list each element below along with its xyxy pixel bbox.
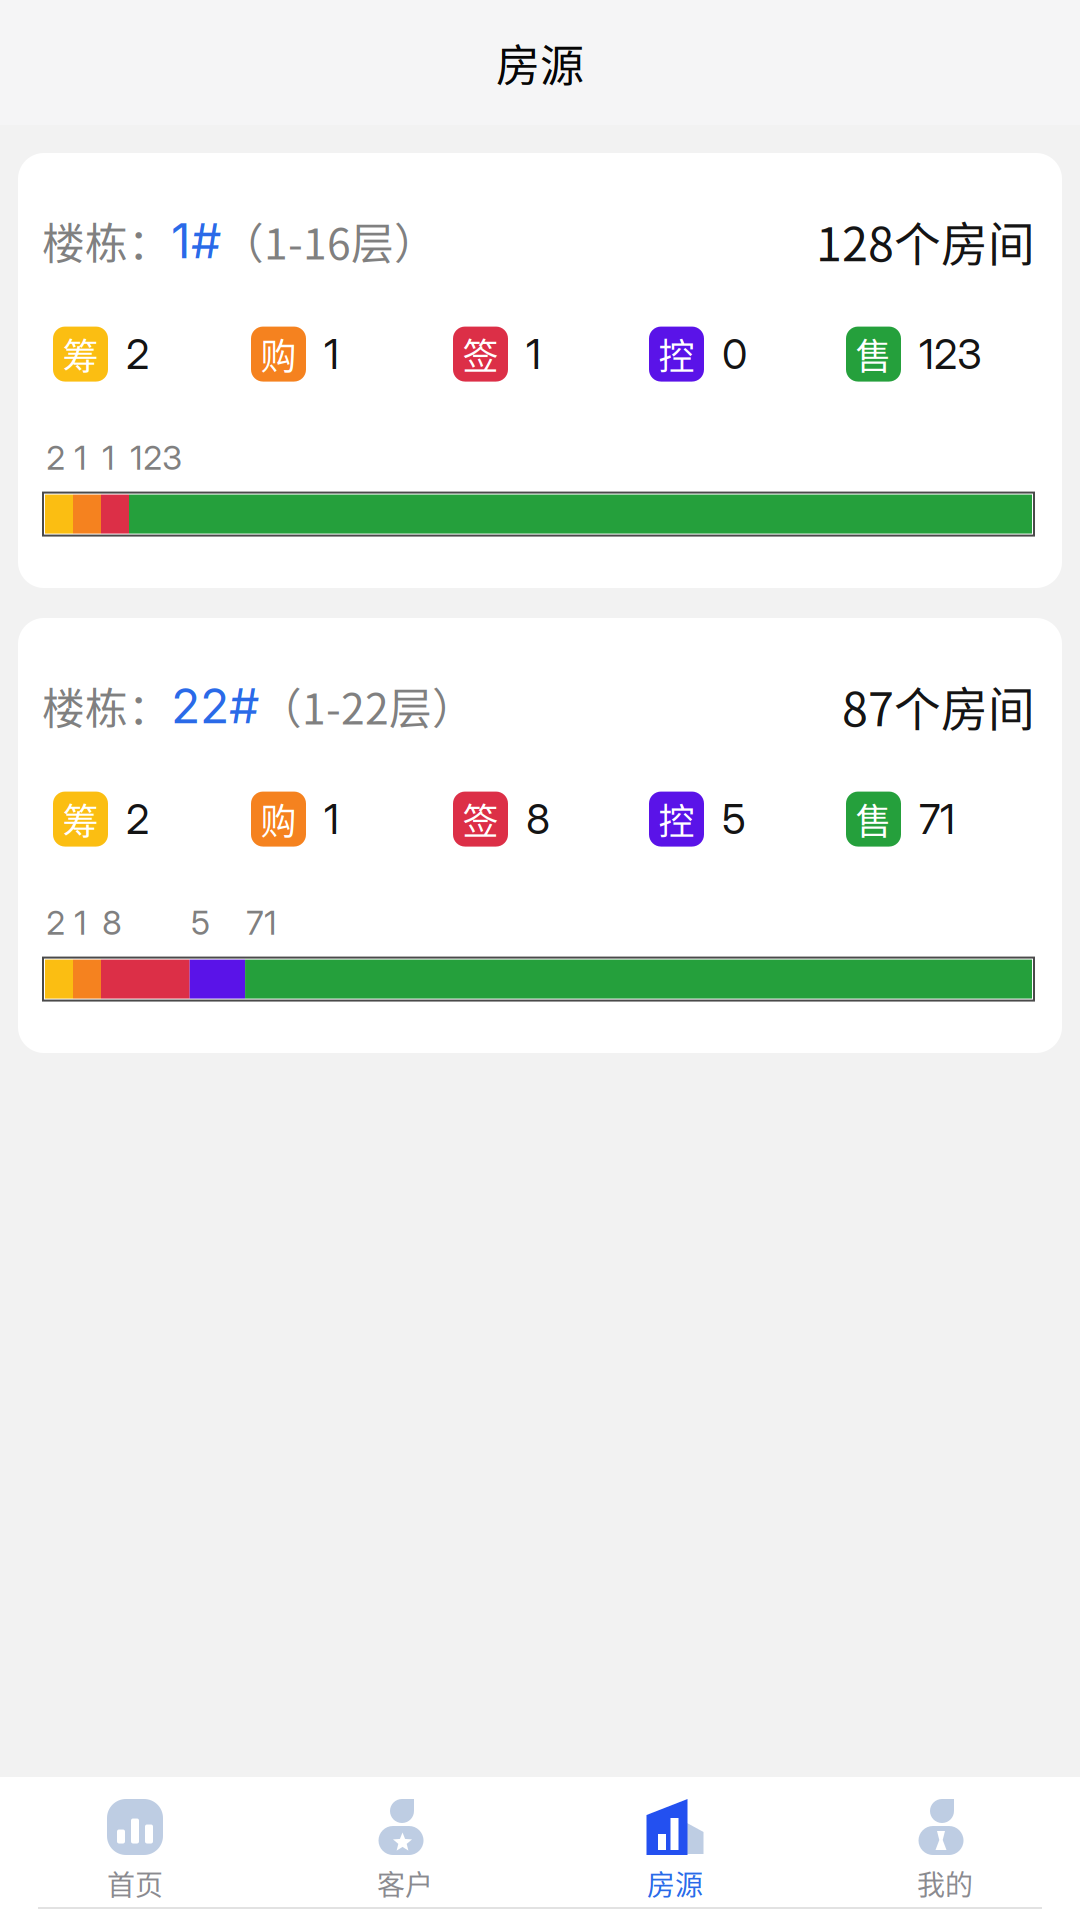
- staticText: （1-16层）: [221, 210, 437, 272]
- button[interactable]: 首页: [0, 1799, 270, 1903]
- staticText: 1: [74, 438, 87, 478]
- staticText: 1: [74, 903, 87, 943]
- staticText: 8: [102, 903, 122, 943]
- button[interactable]: 房源: [540, 1799, 810, 1903]
- staticText: 87个房间: [842, 672, 1035, 740]
- staticText: 128个房间: [816, 207, 1035, 275]
- staticText: 123: [919, 329, 982, 379]
- staticText: 房源: [647, 1863, 703, 1903]
- staticText: 1#: [171, 212, 221, 270]
- staticText: 售: [855, 328, 891, 380]
- staticText: 购: [260, 328, 296, 380]
- staticText: 1: [324, 794, 339, 844]
- staticText: 客户: [377, 1863, 433, 1903]
- staticText: 71: [246, 903, 277, 943]
- staticText: 2: [46, 438, 65, 478]
- staticText: 2: [126, 329, 149, 379]
- staticText: 楼栋：: [42, 675, 171, 737]
- staticText: 2: [46, 903, 65, 943]
- staticText: 签: [462, 793, 498, 845]
- button[interactable]: 楼栋：: [18, 153, 1062, 588]
- staticText: 71: [919, 794, 955, 844]
- staticText: 2: [126, 794, 149, 844]
- staticText: 签: [462, 328, 498, 380]
- staticText: （1-22层）: [259, 675, 475, 737]
- staticText: 控: [658, 793, 694, 845]
- staticText: 0: [722, 329, 747, 379]
- staticText: 1: [526, 329, 541, 379]
- staticText: 楼栋：: [42, 210, 171, 272]
- staticText: 8: [526, 794, 550, 844]
- staticText: 房源: [496, 31, 584, 94]
- staticText: 1: [102, 438, 115, 478]
- staticText: 123: [130, 438, 182, 478]
- staticText: 筹: [62, 328, 98, 380]
- staticText: 售: [855, 793, 891, 845]
- staticText: 22#: [171, 677, 259, 735]
- button[interactable]: 客户: [270, 1799, 540, 1903]
- staticText: 控: [658, 328, 694, 380]
- staticText: 筹: [62, 793, 98, 845]
- staticText: 购: [260, 793, 296, 845]
- staticText: 首页: [107, 1863, 163, 1903]
- button[interactable]: 楼栋：: [18, 618, 1062, 1053]
- staticText: 我的: [917, 1863, 973, 1903]
- button[interactable]: 我的: [810, 1799, 1080, 1903]
- staticText: 5: [722, 794, 746, 844]
- staticText: 1: [324, 329, 339, 379]
- staticText: 5: [191, 903, 210, 943]
